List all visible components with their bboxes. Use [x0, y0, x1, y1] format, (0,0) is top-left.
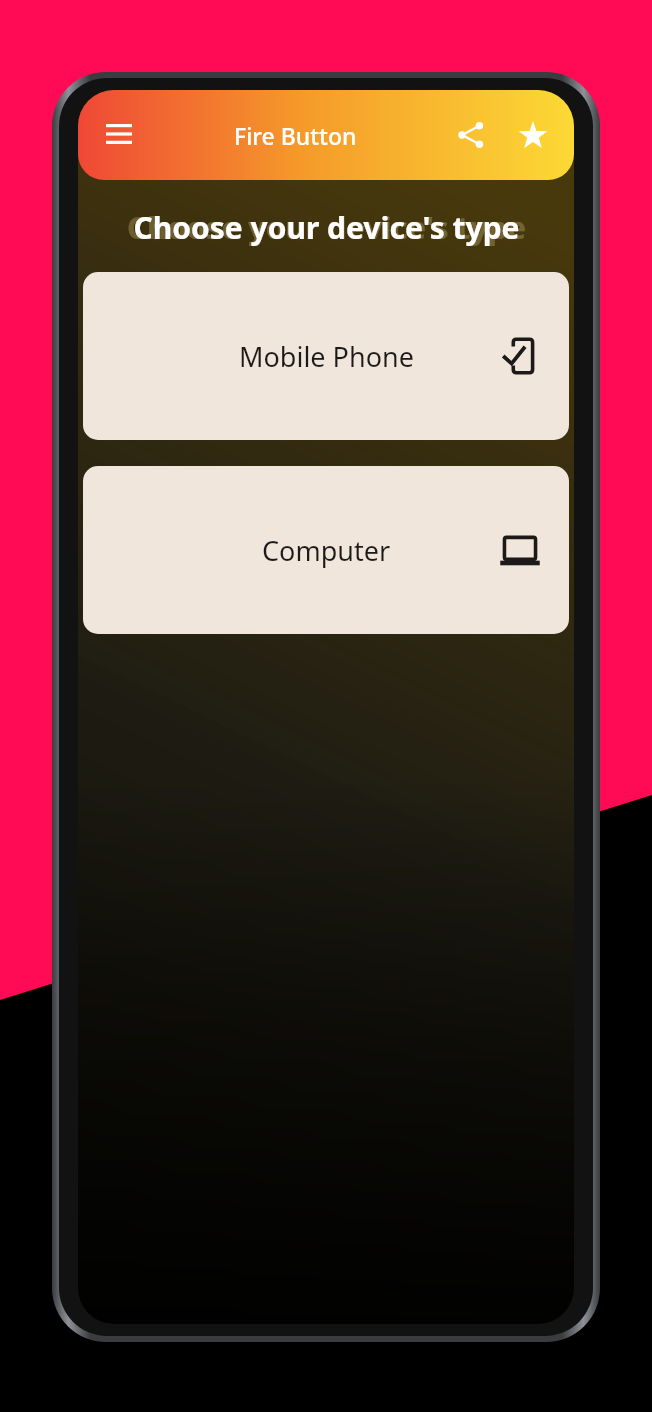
button[interactable]: Mobile Phone: [83, 272, 569, 440]
staticText: Choose your device's type: [127, 206, 526, 248]
staticText: Fire Button: [234, 120, 357, 151]
button[interactable]: Share: [448, 112, 494, 158]
button[interactable]: Rate this app: [510, 112, 556, 158]
button[interactable]: Computer: [83, 466, 569, 634]
staticText: Mobile Phone: [239, 338, 414, 375]
staticText: Choose your device's type: [133, 207, 520, 248]
button[interactable]: Open navigation menu: [96, 112, 142, 158]
staticText: Computer: [262, 532, 391, 569]
